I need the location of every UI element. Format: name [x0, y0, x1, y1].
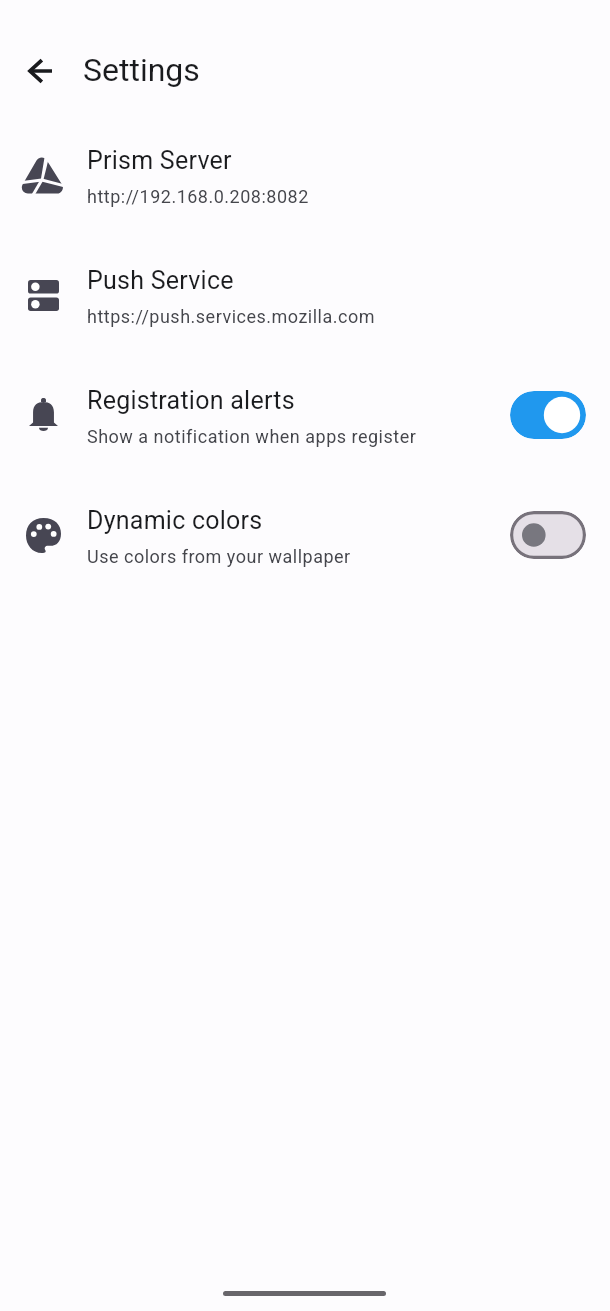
staticText: Prism Server [87, 146, 232, 175]
button[interactable]: Push Service [0, 240, 610, 360]
staticText: https://push.services.mozilla.com [87, 306, 375, 327]
staticText: Dynamic colors [87, 506, 263, 535]
staticText: Push Service [87, 266, 234, 295]
button[interactable]: Registration alerts, on [510, 391, 586, 439]
staticText: Show a notification when apps register [87, 426, 417, 447]
button[interactable]: Back [16, 47, 64, 95]
button[interactable]: Dynamic colors [0, 480, 610, 600]
staticText: Registration alerts [87, 386, 295, 415]
staticText: Settings [83, 51, 200, 89]
staticText: Use colors from your wallpaper [87, 546, 351, 567]
button[interactable]: Dynamic colors, off [510, 511, 586, 559]
button[interactable]: Registration alerts [0, 360, 610, 480]
button[interactable]: Prism Server [0, 120, 610, 240]
staticText: http://192.168.0.208:8082 [87, 186, 309, 207]
